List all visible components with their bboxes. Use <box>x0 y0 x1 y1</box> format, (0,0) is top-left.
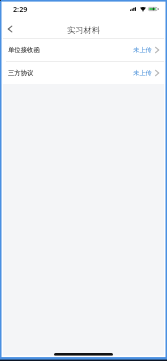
staticText: 单位接收函 <box>8 46 40 54</box>
button[interactable]: Back <box>0 18 19 39</box>
staticText: 未上传 <box>133 46 152 54</box>
staticText: 单位接收函 <box>8 46 40 54</box>
staticText: 实习材料 <box>67 25 100 35</box>
button[interactable]: 三方协议 <box>0 62 167 84</box>
staticText: 2:29 <box>13 4 28 14</box>
staticText: 三方协议 <box>8 69 34 77</box>
staticText: 未上传 <box>133 69 152 77</box>
staticText: 三方协议 <box>8 69 34 77</box>
button[interactable]: 单位接收函 <box>0 39 167 61</box>
